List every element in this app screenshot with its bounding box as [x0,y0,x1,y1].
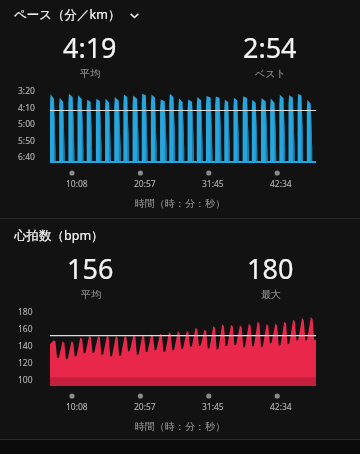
staticText: 100 [18,374,33,386]
staticText: 180 [247,250,294,287]
staticText: 10:08 [66,401,88,413]
staticText: 心拍数（bpm） [14,227,104,244]
staticText: 160 [18,323,33,335]
staticText: 4:10 [18,102,35,114]
staticText: 10:08 [66,178,88,190]
staticText: 2:54 [243,29,297,66]
staticText: 42:34 [270,401,292,413]
staticText: 156 [67,250,114,287]
staticText: 時間（時：分：秒） [135,197,225,210]
staticText: 最大 [261,288,281,301]
staticText: 20:57 [134,401,156,413]
staticText: 4:19 [63,29,117,66]
staticText: 20:57 [134,178,156,190]
staticText: 5:50 [18,135,35,147]
staticText: ペース（分／km） [14,6,121,23]
staticText: 31:45 [202,401,224,413]
button[interactable]: ペース（分／km） [14,6,141,23]
staticText: 31:45 [202,178,224,190]
staticText: ベスト [255,67,286,80]
staticText: 平均 [80,67,100,80]
staticText: 6:40 [18,151,35,163]
staticText: 180 [18,306,33,318]
staticText: 平均 [81,288,101,301]
button[interactable]: 心拍数（bpm） [14,227,104,244]
staticText: 時間（時：分：秒） [135,420,225,433]
staticText: 120 [18,357,33,369]
staticText: 3:20 [18,85,35,97]
staticText: 5:00 [18,118,35,130]
staticText: 42:34 [270,178,292,190]
other: Change metric [127,8,141,22]
staticText: 140 [18,340,33,352]
